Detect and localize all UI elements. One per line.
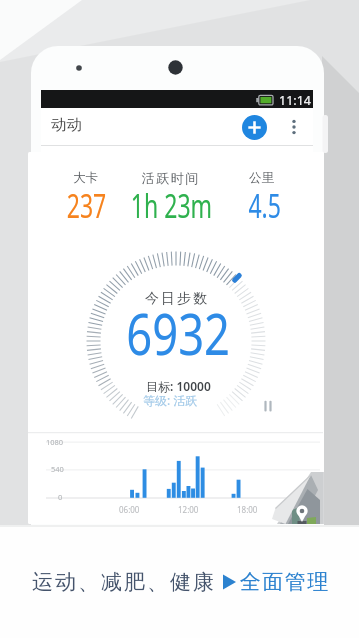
staticText: 18:00	[237, 504, 258, 515]
button[interactable]	[215, 570, 239, 594]
staticText: 4.5	[248, 184, 281, 228]
button[interactable]	[260, 396, 276, 416]
staticText: 12:00	[178, 504, 199, 515]
button[interactable]	[285, 116, 303, 138]
staticText: 540	[51, 464, 64, 474]
staticText: 06:00	[119, 504, 140, 515]
staticText: 今日步数	[144, 290, 208, 308]
staticText: 目标: 10000	[146, 378, 211, 394]
staticText: 等级: 活跃	[143, 392, 198, 408]
button[interactable]	[291, 500, 313, 523]
staticText: 237	[67, 184, 106, 228]
button[interactable]: 全面管理	[239, 569, 329, 595]
staticText: 11:14	[279, 92, 311, 109]
staticText: 6932	[126, 295, 231, 365]
staticText: 1h 23m	[131, 184, 212, 228]
staticText: 活跃时间	[141, 170, 199, 186]
staticText: 0	[58, 492, 63, 502]
staticText: 运动、减肥、健康	[31, 569, 215, 595]
staticText: 公里	[249, 170, 274, 186]
staticText: 全面管理	[239, 569, 329, 595]
staticText: 1080	[46, 437, 64, 447]
staticText: 动动	[51, 115, 82, 135]
button[interactable]	[242, 115, 267, 140]
staticText: 大卡	[73, 170, 98, 186]
